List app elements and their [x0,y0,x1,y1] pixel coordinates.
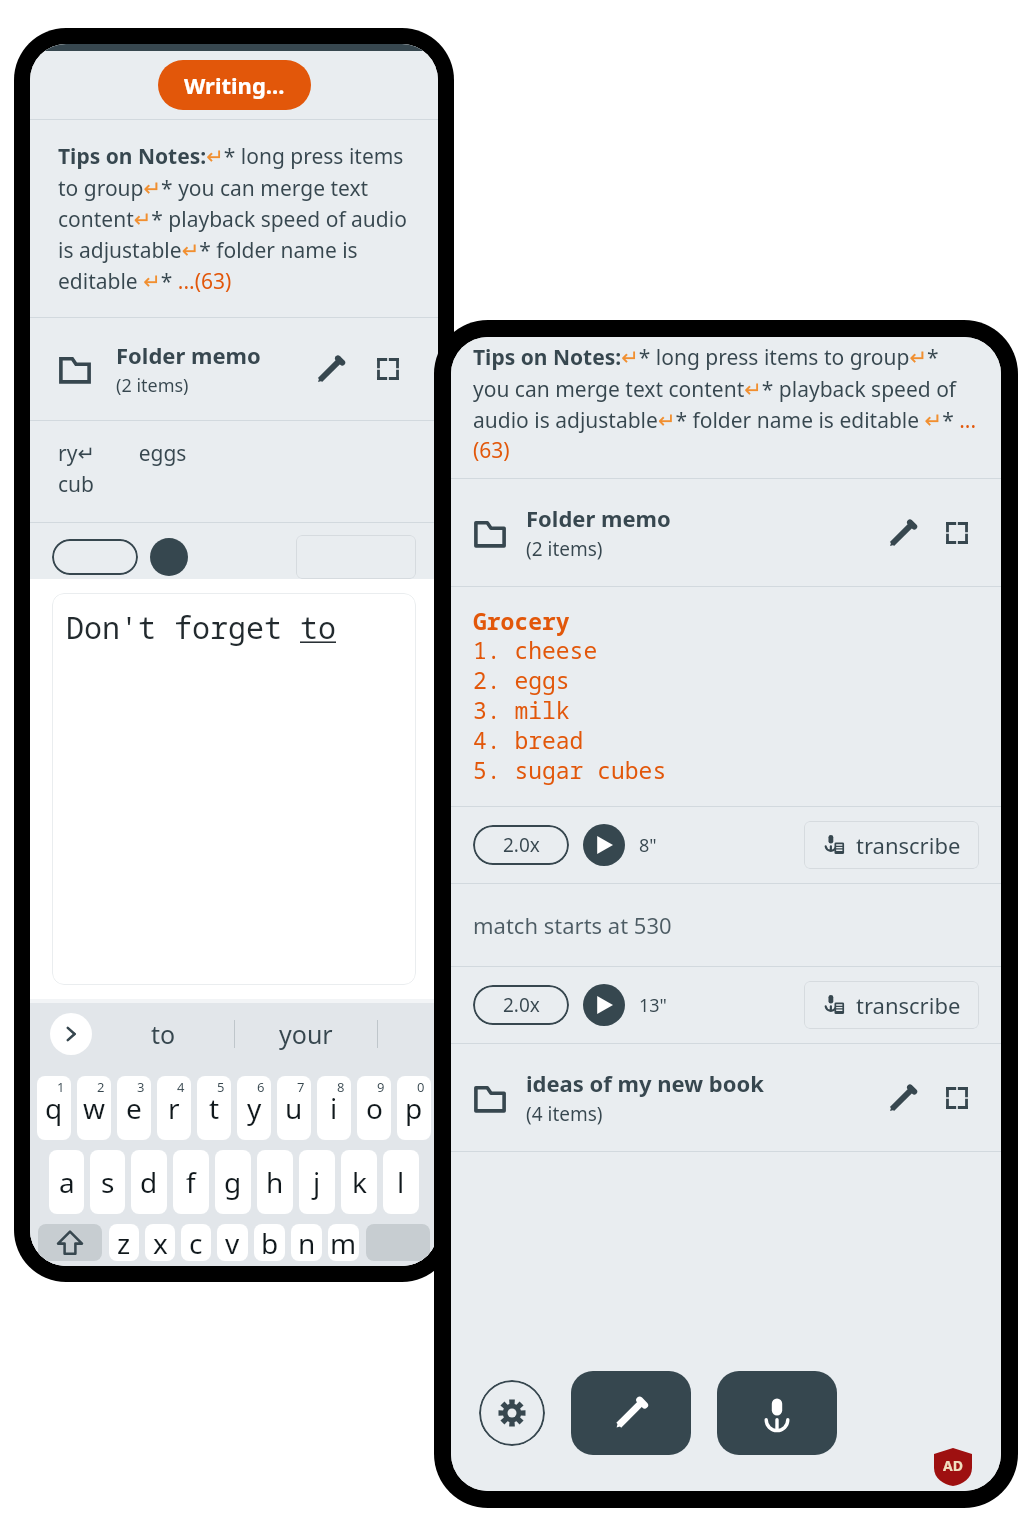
button[interactable]: v [217,1224,248,1261]
button[interactable]: 1 [37,1076,71,1140]
button[interactable]: 2.0x [473,825,569,865]
button[interactable]: x [145,1224,175,1261]
button[interactable]: 2.0x [451,981,1001,1029]
staticText: n [298,1224,316,1261]
button[interactable]: f [173,1150,209,1214]
staticText: z [117,1224,131,1261]
button[interactable]: b [254,1224,285,1261]
staticText: p [405,1089,423,1127]
button[interactable]: to [92,1003,234,1065]
staticText: x [153,1224,168,1261]
staticText: g [224,1163,242,1201]
button[interactable]: your [235,1003,377,1065]
button[interactable]: Backspace [366,1224,430,1261]
button[interactable]: ideas of my new book [451,1068,1001,1127]
staticText: Folder memo [526,503,671,533]
button[interactable]: 4 [157,1076,191,1140]
button[interactable]: Folder memo [451,503,1001,562]
button[interactable]: Record audio [717,1371,837,1455]
button[interactable]: k [341,1150,377,1214]
button[interactable]: 7 [277,1076,311,1140]
button[interactable]: j [299,1150,335,1214]
staticText: to [151,1017,176,1051]
button[interactable]: 3 [117,1076,151,1140]
button[interactable]: Play [583,984,625,1026]
staticText: d [140,1163,158,1201]
button[interactable]: Folder memo [30,340,438,398]
staticText: AD [943,1456,963,1475]
staticText: y [247,1089,262,1127]
button[interactable]: h [257,1150,293,1214]
button[interactable]: Edit folder name [308,347,352,391]
staticText: 3 [137,1078,145,1096]
staticText: 13" [639,993,667,1018]
staticText: 1 [57,1078,65,1096]
button[interactable]: 6 [237,1076,271,1140]
button[interactable]: 2.0x [451,821,1001,869]
button[interactable]: Tips on Notes:↵* long press items to gro… [451,343,1001,464]
button[interactable]: g [215,1150,251,1214]
button[interactable]: Expand folder [935,511,979,555]
button[interactable]: Edit folder name [880,511,924,555]
button[interactable]: 0 [397,1076,431,1140]
button[interactable]: Edit folder name [880,1076,924,1120]
staticText: 6 [257,1078,265,1096]
staticText: v [225,1224,240,1261]
staticText: Tips on Notes:↵* long press items to gro… [473,343,979,464]
staticText: your [279,1017,333,1051]
button[interactable]: s [90,1150,125,1214]
staticText: 9 [377,1078,385,1096]
staticText: 2 [97,1078,105,1096]
button[interactable]: 2 [77,1076,111,1140]
staticText: (2 items) [116,373,189,398]
button[interactable]: Shift [38,1224,102,1261]
staticText: transcribe [856,990,961,1020]
button[interactable]: z [109,1224,139,1261]
staticText: a [59,1163,75,1201]
staticText: Writing... [184,70,285,100]
staticText: c [189,1224,203,1261]
staticText: 8" [639,833,657,858]
staticText: w [83,1089,106,1127]
staticText: o [366,1089,383,1127]
staticText: Don't forget to [66,607,336,648]
staticText: 4 [177,1078,185,1096]
button[interactable]: Writing... [158,60,311,110]
staticText: s [101,1163,115,1201]
staticText: h [266,1163,284,1201]
staticText: k [352,1163,367,1201]
button[interactable]: 8 [317,1076,351,1140]
staticText: m [330,1224,357,1261]
button[interactable]: l [383,1150,419,1214]
staticText: j [313,1163,321,1201]
button[interactable]: Don't forget to [52,593,416,985]
button[interactable]: match starts at 530 [451,884,1001,966]
button[interactable] [52,539,138,575]
button[interactable]: More suggestions [50,1013,92,1055]
button[interactable]: m [328,1224,359,1261]
staticText: 0 [417,1078,425,1096]
button[interactable]: New note [571,1371,691,1455]
button[interactable]: transcribe [804,981,979,1029]
button[interactable]: n [291,1224,322,1261]
button[interactable]: 2.0x [473,985,569,1025]
staticText: (4 items) [526,1101,603,1127]
button[interactable]: Expand folder [935,1076,979,1120]
staticText: ry↵ eggs cub [58,439,187,498]
button[interactable]: Tips on Notes:↵* long press items to gro… [30,120,438,317]
staticText: l [397,1163,405,1201]
staticText: ideas of my new book [526,1068,764,1098]
button[interactable]: Settings [479,1380,545,1446]
staticText: match starts at 530 [473,910,672,940]
button[interactable]: a [49,1150,84,1214]
button[interactable]: d [131,1150,167,1214]
staticText: b [261,1224,279,1261]
button[interactable]: Expand folder [366,347,410,391]
button[interactable]: 9 [357,1076,391,1140]
button[interactable]: transcribe [804,821,979,869]
button[interactable]: c [181,1224,211,1261]
button[interactable]: Play [583,824,625,866]
button[interactable]: 5 [197,1076,231,1140]
staticText: 5 [217,1078,225,1096]
button[interactable]: Grocery 1. cheese 2. eggs 3. milk 4. bre… [451,605,1001,786]
